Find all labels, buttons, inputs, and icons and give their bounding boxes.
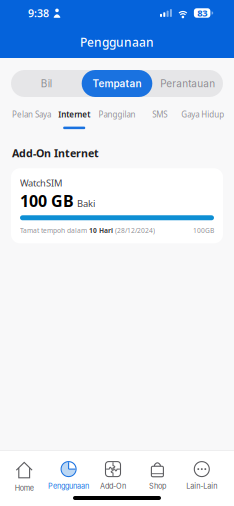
button[interactable]: Penggunaan xyxy=(46,462,91,490)
staticText: 83 xyxy=(197,7,207,19)
staticText: Tamat tempoh dalam xyxy=(20,226,89,235)
staticText: Penggunaan xyxy=(48,482,89,490)
staticText: 100GB xyxy=(193,226,214,235)
staticText: Gaya Hidup xyxy=(181,109,224,120)
staticText: Add-On xyxy=(100,482,126,490)
staticText: Lain-Lain xyxy=(186,482,217,490)
staticText: Perantauan xyxy=(160,77,215,90)
button[interactable]: Pelan Saya xyxy=(10,109,53,129)
button[interactable]: Tempatan xyxy=(82,70,152,97)
staticText: Shop xyxy=(149,482,166,490)
staticText: Bil xyxy=(41,77,52,90)
button[interactable]: Home xyxy=(2,462,46,492)
button[interactable]: Lain-Lain xyxy=(180,462,224,490)
button[interactable]: Perantauan xyxy=(152,70,223,97)
staticText: Home xyxy=(15,484,34,492)
staticText: Pelan Saya xyxy=(12,109,51,120)
button[interactable]: SMS xyxy=(138,109,181,129)
button[interactable]: Bil xyxy=(11,70,82,97)
staticText: 100 GB xyxy=(20,190,74,211)
staticText: Penggunaan xyxy=(80,34,154,50)
staticText: 9:38 xyxy=(28,6,49,20)
staticText: Panggilan xyxy=(98,109,135,120)
staticText: WatchSIM xyxy=(20,177,62,189)
button[interactable]: Shop xyxy=(135,462,180,490)
staticText: Tempatan xyxy=(92,77,141,90)
staticText: Baki xyxy=(77,197,95,210)
button[interactable]: Internet xyxy=(53,109,96,129)
staticText: (28/12/2024) xyxy=(113,226,155,235)
staticText: 10 Hari xyxy=(89,226,113,235)
staticText: SMS xyxy=(152,109,167,120)
button[interactable]: Panggilan xyxy=(96,109,138,129)
staticText: Internet xyxy=(58,109,90,120)
staticText: Add-On Internet xyxy=(12,146,99,160)
button[interactable]: Gaya Hidup xyxy=(181,109,224,129)
button[interactable]: Add-On xyxy=(91,462,135,490)
